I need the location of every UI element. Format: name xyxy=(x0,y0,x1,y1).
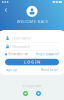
staticText: Password xyxy=(12,44,29,49)
staticText: L O G I N xyxy=(24,59,40,65)
button[interactable]: Need help? xyxy=(41,68,58,72)
button[interactable]: Remember me xyxy=(5,52,28,56)
button[interactable]: Sign in with WeChat xyxy=(23,91,28,96)
staticText: Sign up xyxy=(6,68,17,72)
button[interactable]: L O G I N xyxy=(5,59,59,65)
button[interactable]: Forgot password? xyxy=(36,52,59,56)
staticText: ‹ xyxy=(4,4,6,15)
staticText: Username xyxy=(12,35,31,41)
button[interactable]: Back xyxy=(2,6,9,13)
button[interactable]: Sign up xyxy=(6,68,17,72)
staticText: or login with xyxy=(22,84,41,88)
staticText: Remember me xyxy=(8,52,28,56)
staticText: Need help? xyxy=(41,68,58,72)
staticText: Forgot password? xyxy=(36,52,59,56)
button[interactable]: Sign in with QQ xyxy=(36,91,41,96)
staticText: WELCOME BACK xyxy=(16,19,47,24)
